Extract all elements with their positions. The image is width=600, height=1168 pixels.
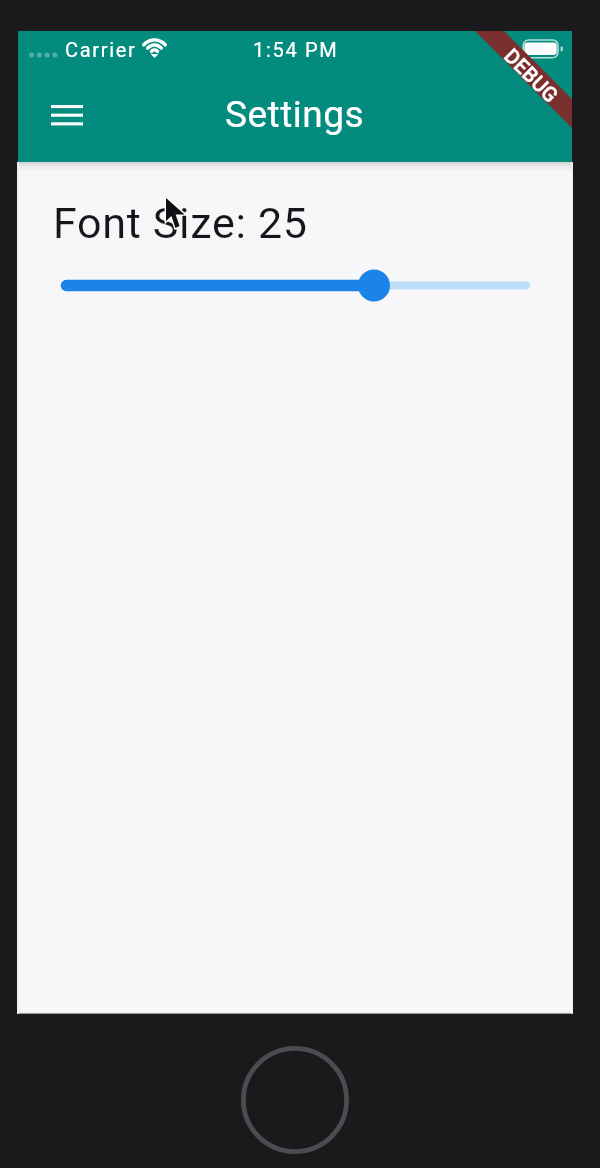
staticText: 1:54 PM (253, 38, 339, 61)
button[interactable]: Open navigation menu (42, 90, 92, 140)
staticText: Carrier (65, 38, 137, 61)
staticText: Settings (225, 93, 365, 136)
staticText: Font Size: 25 (53, 198, 308, 248)
button[interactable] (18, 248, 572, 314)
staticText: DEBUG (500, 44, 564, 107)
